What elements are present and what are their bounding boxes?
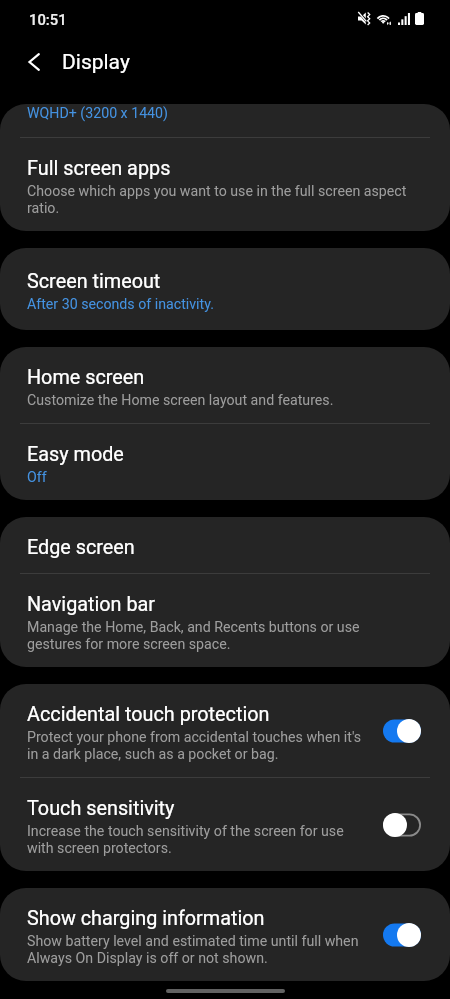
button[interactable]: Screen timeout [0,248,450,330]
staticText: After 30 seconds of inactivity. [27,296,214,313]
button[interactable]: Accidental touch protection [0,684,450,777]
staticText: Screen timeout [27,270,161,293]
staticText: Increase the touch sensitivity of the sc… [27,823,368,857]
button[interactable]: Off [382,813,422,837]
staticText: Show battery level and estimated time un… [27,933,368,967]
button[interactable]: On [382,719,422,743]
staticText: Home screen [27,366,145,389]
button[interactable]: Navigation bar [0,574,450,667]
button[interactable]: Full screen apps [0,138,450,231]
button[interactable]: Easy mode [0,424,450,500]
staticText: Display [62,50,130,75]
button[interactable]: Show charging information [0,888,450,981]
button[interactable]: On [382,923,422,947]
staticText: Customize the Home screen layout and fea… [27,392,334,409]
staticText: Accidental touch protection [27,703,270,726]
staticText: Off [27,469,47,486]
staticText: Navigation bar [27,593,156,616]
button[interactable]: Navigate up [12,40,56,84]
staticText: Manage the Home, Back, and Recents butto… [27,619,412,653]
staticText: Touch sensitivity [27,797,175,820]
staticText: Easy mode [27,443,124,466]
button[interactable]: Home screen [0,347,450,423]
staticText: Choose which apps you want to use in the… [27,183,412,217]
staticText: Show charging information [27,907,265,930]
staticText: 10:51 [29,11,67,28]
staticText: Protect your phone from accidental touch… [27,729,368,763]
button[interactable]: Edge screen [0,517,450,573]
staticText: WQHD+ (3200 x 1440) [27,105,169,122]
staticText: Edge screen [27,536,135,559]
button[interactable]: Touch sensitivity [0,778,450,871]
staticText: Full screen apps [27,157,171,180]
